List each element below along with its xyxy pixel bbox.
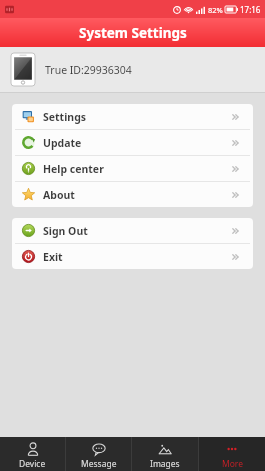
- other: About: [22, 188, 35, 201]
- staticText: Images: [150, 458, 180, 470]
- staticText: Settings: [43, 110, 87, 124]
- staticText: 82%: [208, 5, 223, 15]
- staticText: Update: [43, 136, 82, 150]
- staticText: Help center: [43, 162, 104, 176]
- staticText: More: [222, 458, 243, 470]
- staticText: Exit: [43, 250, 63, 264]
- staticText: 17:16: [240, 4, 261, 15]
- staticText: Message: [81, 458, 117, 470]
- staticText: Sign Out: [43, 224, 88, 238]
- button[interactable]: About: [12, 182, 253, 207]
- button[interactable]: Settings: [12, 104, 253, 129]
- other: Help center: [22, 162, 35, 175]
- button[interactable]: Help center: [12, 156, 253, 181]
- button[interactable]: Sign Out: [12, 218, 253, 243]
- other: Sign Out: [22, 224, 35, 237]
- button[interactable]: Images: [132, 437, 198, 471]
- button[interactable]: Device: [0, 437, 65, 471]
- button[interactable]: Exit: [12, 244, 253, 269]
- staticText: System Settings: [79, 24, 187, 42]
- button[interactable]: More: [199, 437, 265, 471]
- staticText: About: [43, 188, 75, 202]
- staticText: True ID:29936304: [45, 63, 132, 77]
- button[interactable]: Update: [12, 130, 253, 155]
- button[interactable]: True ID:29936304: [0, 47, 265, 92]
- staticText: Device: [19, 458, 46, 470]
- other: Settings: [22, 110, 35, 123]
- other: Update: [22, 136, 35, 149]
- button[interactable]: Message: [66, 437, 131, 471]
- other: Exit: [22, 250, 35, 263]
